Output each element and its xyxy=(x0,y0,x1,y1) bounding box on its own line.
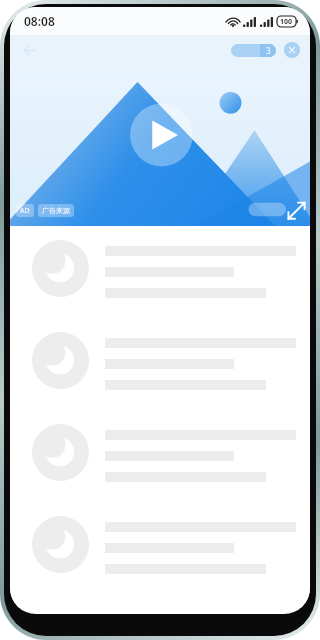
button[interactable]: 广告来源 xyxy=(38,204,74,217)
button[interactable]: Advertisement video xyxy=(10,65,310,226)
button[interactable]: 3 xyxy=(231,44,276,57)
button[interactable] xyxy=(10,240,310,298)
staticText: 100 xyxy=(280,17,293,27)
staticText: 3 xyxy=(266,45,271,56)
button[interactable] xyxy=(10,424,310,482)
button[interactable]: Back xyxy=(16,37,42,63)
button[interactable] xyxy=(10,516,310,574)
button[interactable]: Close xyxy=(284,42,300,58)
button[interactable]: AD xyxy=(16,204,34,217)
staticText: 08:08 xyxy=(24,13,55,29)
staticText: 广告来源 xyxy=(42,206,70,215)
staticText: AD xyxy=(20,206,30,216)
button[interactable] xyxy=(10,332,310,390)
